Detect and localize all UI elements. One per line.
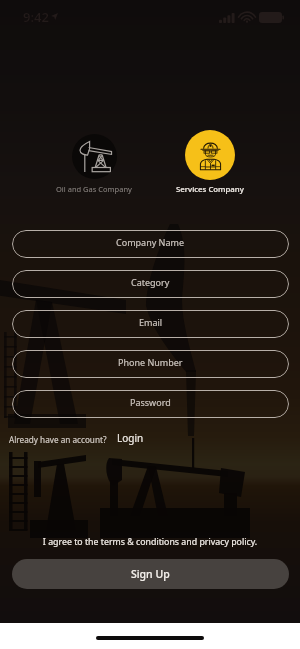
staticText: Email	[139, 316, 163, 328]
button[interactable]: Company Name	[12, 230, 289, 258]
staticText: Oil and Gas Company	[56, 184, 132, 194]
button[interactable]: Category	[12, 270, 289, 298]
staticText: I agree to the terms & conditions and pr…	[0, 536, 300, 548]
button[interactable]: Phone Number	[12, 350, 289, 378]
staticText: Password	[130, 396, 171, 408]
staticText: 9:42	[23, 8, 49, 26]
staticText: Services Company	[176, 184, 244, 195]
staticText: Category	[131, 276, 170, 288]
button[interactable]: Email	[12, 310, 289, 338]
button[interactable]: Password	[12, 390, 289, 418]
staticText: Sign Up	[131, 567, 170, 581]
button[interactable]: Services Company	[150, 130, 270, 195]
staticText: Login	[117, 431, 144, 445]
staticText: Company Name	[116, 236, 185, 248]
staticText: Already have an account?	[9, 434, 107, 445]
button[interactable]: Login	[117, 431, 144, 445]
button[interactable]: Oil and Gas Company	[34, 134, 154, 194]
staticText: Phone Number	[118, 356, 183, 368]
button[interactable]: Sign Up	[12, 559, 289, 589]
